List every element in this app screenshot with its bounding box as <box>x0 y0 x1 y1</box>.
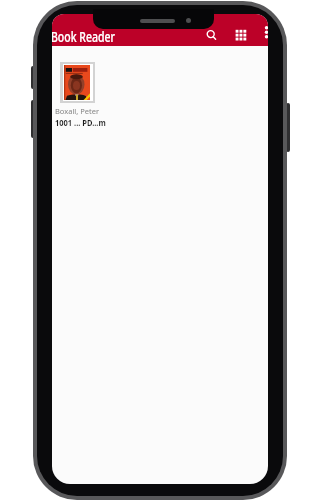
button[interactable] <box>235 29 247 41</box>
button[interactable] <box>202 26 220 44</box>
staticText: Boxall, Peter <box>55 106 100 116</box>
button[interactable]: Boxall, Peter <box>54 58 158 130</box>
button[interactable] <box>262 26 268 42</box>
staticText: Book Reader <box>52 26 115 46</box>
button[interactable]: Book Reader <box>52 14 268 46</box>
staticText: 1001 ... PD...m <box>55 117 106 129</box>
